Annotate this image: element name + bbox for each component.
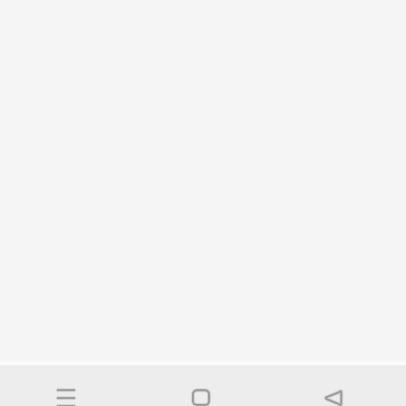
button[interactable]: Home xyxy=(169,366,233,406)
button[interactable]: Recent apps xyxy=(34,366,98,406)
button[interactable]: Back xyxy=(301,366,365,406)
